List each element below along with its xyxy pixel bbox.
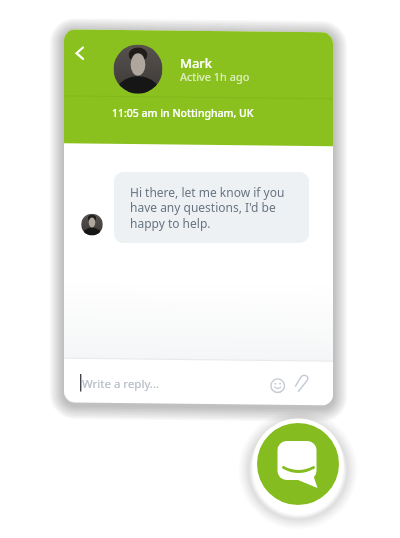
staticText: Active 1h ago (180, 69, 250, 84)
staticText: Hi there, let me know if you have any qu… (130, 184, 285, 232)
staticText: Write a reply... (82, 376, 160, 392)
staticText: Mark (180, 54, 213, 72)
staticText: 11:05 am in Nottingham, UK (112, 106, 254, 120)
